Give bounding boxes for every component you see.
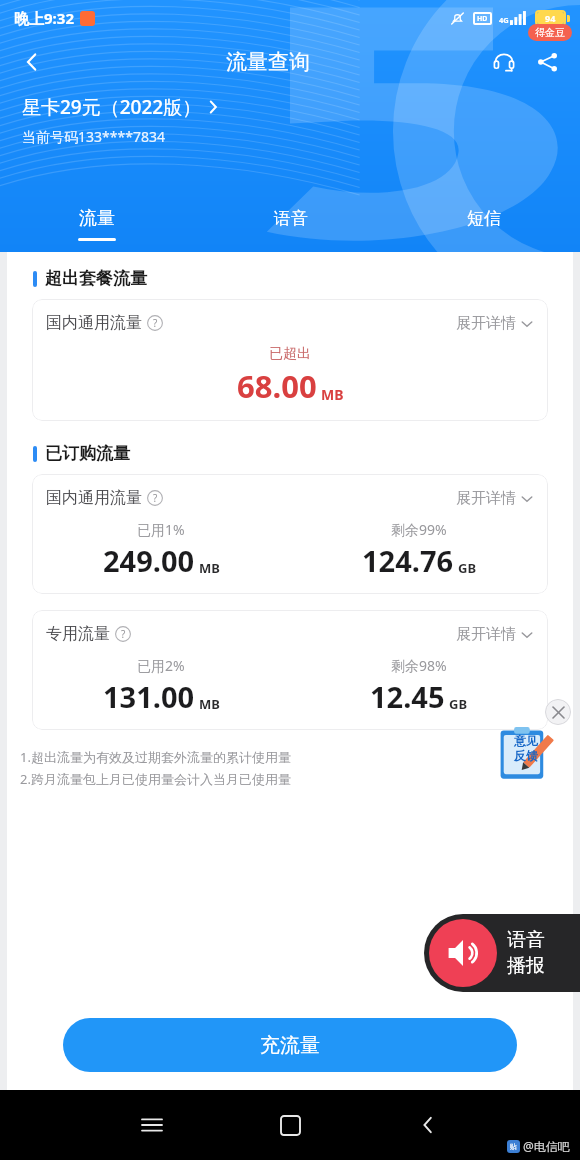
button[interactable]: 国内通用流量 bbox=[32, 299, 548, 421]
staticText: 星卡29元（2022版） bbox=[22, 94, 202, 120]
button[interactable]: Close bbox=[545, 699, 571, 725]
staticText: 展开详情 bbox=[456, 489, 516, 508]
staticText: 展开详情 bbox=[456, 625, 516, 644]
staticText: 超出套餐流量 bbox=[45, 268, 147, 289]
staticText: 当前号码133****7834 bbox=[22, 127, 165, 146]
staticText: 12.45 bbox=[370, 677, 445, 716]
button[interactable]: 得金豆 bbox=[535, 26, 565, 39]
staticText: 展开详情 bbox=[456, 314, 516, 333]
staticText: 专用流量 bbox=[46, 624, 110, 644]
staticText: 流量 bbox=[79, 207, 115, 230]
staticText: 68.00 bbox=[237, 365, 317, 407]
staticText: 剩余99% bbox=[391, 520, 447, 539]
button[interactable]: Help bbox=[147, 490, 163, 506]
staticText: HD bbox=[477, 14, 488, 24]
staticText: GB bbox=[458, 559, 477, 577]
button[interactable]: 展开详情 bbox=[456, 314, 534, 333]
button[interactable]: Customer service bbox=[482, 40, 526, 84]
staticText: ? bbox=[153, 491, 158, 505]
button[interactable]: Help bbox=[115, 626, 131, 642]
staticText: 语音 bbox=[274, 208, 308, 229]
staticText: 充流量 bbox=[260, 1033, 320, 1058]
button[interactable]: Feedback bbox=[498, 726, 550, 782]
staticText: 播报 bbox=[507, 954, 545, 978]
button[interactable]: 星卡29元（2022版） bbox=[22, 94, 221, 120]
button[interactable]: Back bbox=[10, 40, 54, 84]
staticText: @电信吧 bbox=[523, 1138, 570, 1154]
staticText: 249.00 bbox=[103, 541, 195, 580]
staticText: 语音 bbox=[507, 928, 545, 952]
button[interactable]: 展开详情 bbox=[456, 625, 534, 644]
staticText: 已用2% bbox=[137, 656, 185, 675]
button[interactable]: 语音 bbox=[194, 196, 387, 252]
button[interactable]: 展开详情 bbox=[456, 489, 534, 508]
button[interactable]: 短信 bbox=[387, 196, 580, 252]
staticText: 已超出 bbox=[269, 345, 311, 363]
staticText: 剩余98% bbox=[391, 656, 447, 675]
button[interactable]: 国内通用流量 bbox=[32, 474, 548, 594]
staticText: ? bbox=[153, 316, 158, 330]
button[interactable]: Help bbox=[147, 315, 163, 331]
staticText: 短信 bbox=[467, 208, 501, 229]
button[interactable]: Home bbox=[264, 1099, 316, 1151]
staticText: 2.跨月流量包上月已使用量会计入当月已使用量 bbox=[20, 770, 291, 788]
button[interactable]: 语音 bbox=[424, 914, 580, 992]
staticText: GB bbox=[449, 695, 468, 713]
button[interactable]: 充流量 bbox=[63, 1018, 517, 1072]
staticText: 意见 bbox=[514, 733, 538, 748]
staticText: MB bbox=[199, 695, 220, 713]
staticText: 流量查询 bbox=[226, 49, 310, 75]
staticText: 131.00 bbox=[103, 677, 195, 716]
staticText: 国内通用流量 bbox=[46, 313, 142, 333]
staticText: 国内通用流量 bbox=[46, 488, 142, 508]
staticText: 得金豆 bbox=[535, 26, 565, 39]
staticText: MB bbox=[321, 385, 344, 404]
staticText: 晚上9:32 bbox=[14, 8, 74, 28]
staticText: MB bbox=[199, 559, 220, 577]
button[interactable]: Back bbox=[402, 1099, 454, 1151]
staticText: 124.76 bbox=[362, 541, 454, 580]
button[interactable]: Share bbox=[526, 40, 570, 84]
button[interactable]: 专用流量 bbox=[32, 610, 548, 730]
staticText: 1.超出流量为有效及过期套外流量的累计使用量 bbox=[20, 748, 291, 766]
button[interactable]: Recents bbox=[126, 1099, 178, 1151]
staticText: 已订购流量 bbox=[45, 443, 130, 464]
staticText: 已用1% bbox=[137, 520, 185, 539]
staticText: 反馈 bbox=[514, 748, 538, 763]
button[interactable]: 流量 bbox=[0, 196, 194, 252]
staticText: ? bbox=[121, 627, 126, 641]
staticText: 4G bbox=[499, 15, 509, 25]
staticText: 贴 bbox=[510, 1142, 517, 1151]
staticText: 94 bbox=[545, 12, 556, 24]
